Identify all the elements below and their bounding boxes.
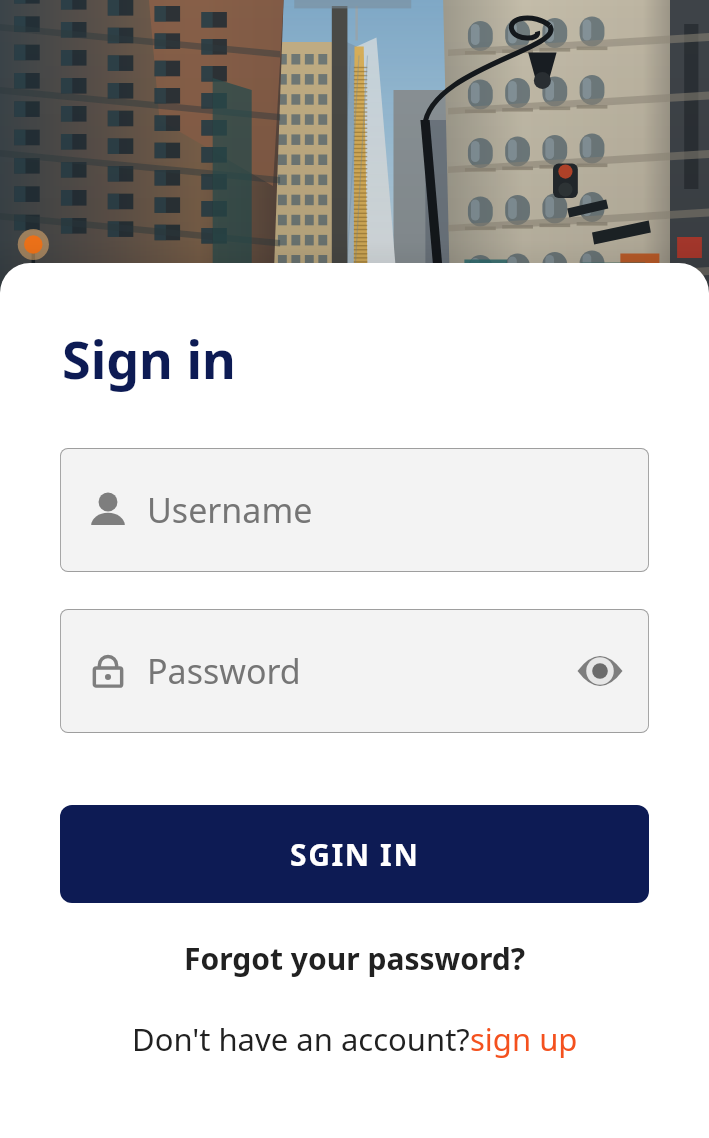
staticText: Username: [147, 487, 313, 533]
button[interactable]: Password: [60, 609, 649, 733]
staticText: sign up: [470, 1018, 578, 1060]
button[interactable]: Show password: [572, 643, 628, 699]
button[interactable]: Username: [60, 448, 649, 572]
staticText: SGIN IN: [290, 834, 420, 875]
staticText: Sign in: [62, 323, 236, 394]
button[interactable]: Forgot your password?: [0, 929, 709, 987]
staticText: Forgot your password?: [184, 938, 526, 979]
button[interactable]: SGIN IN: [60, 805, 649, 903]
button[interactable]: sign up: [470, 1018, 578, 1060]
staticText: Don't have an account?: [132, 1018, 470, 1060]
staticText: Password: [147, 648, 301, 694]
